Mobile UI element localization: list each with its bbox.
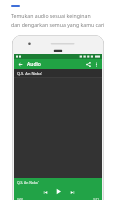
staticText: Q.S. An Naba'	[17, 180, 39, 185]
button[interactable]: Q.S. An Naba'	[14, 69, 102, 77]
button[interactable]: Share	[84, 60, 93, 69]
staticText: Audio	[27, 61, 41, 68]
staticText: Q.S. An Naba'	[17, 71, 43, 76]
button[interactable]: More options	[93, 61, 100, 68]
staticText: dan dengarkan semua yang kamu cari	[11, 21, 105, 28]
button[interactable]: Next	[68, 188, 76, 196]
button[interactable]: Back	[16, 60, 24, 68]
staticText: 3:21	[93, 198, 99, 200]
staticText: 0:00	[17, 198, 23, 200]
staticText: Temukan audio sesuai keinginan	[11, 12, 91, 19]
button[interactable]: Play	[54, 187, 63, 196]
button[interactable]: Previous	[41, 188, 49, 196]
